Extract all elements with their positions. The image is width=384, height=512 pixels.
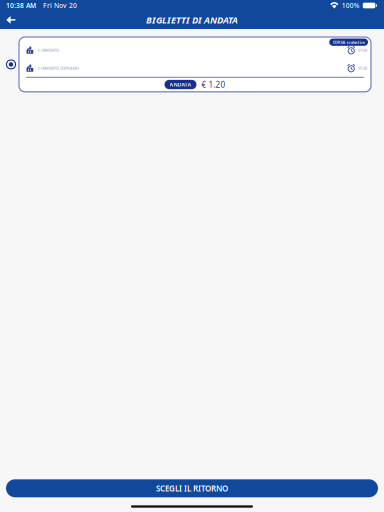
staticText: BIGLIETTI DI ANDATA bbox=[146, 14, 238, 26]
staticText: CHIMENTO bbox=[38, 48, 59, 53]
staticText: CHIMENTO SOPRANO bbox=[38, 66, 79, 71]
staticText: Fri Nov 20 bbox=[43, 1, 77, 10]
button[interactable]: Back bbox=[0, 11, 22, 29]
staticText: 07:30 bbox=[358, 66, 367, 71]
button[interactable]: SCEGLI IL RITORNO bbox=[6, 479, 378, 497]
staticText: 100% bbox=[342, 1, 360, 10]
staticText: € 1.20 bbox=[201, 79, 225, 90]
staticText: CORSA scolastica bbox=[333, 39, 365, 45]
button[interactable]: Select ticket bbox=[3, 55, 19, 73]
staticText: 07:00 bbox=[358, 48, 367, 53]
staticText: SCEGLI IL RITORNO bbox=[156, 483, 228, 494]
staticText: 10:38 AM bbox=[6, 1, 36, 10]
staticText: ANDATA bbox=[169, 81, 191, 88]
